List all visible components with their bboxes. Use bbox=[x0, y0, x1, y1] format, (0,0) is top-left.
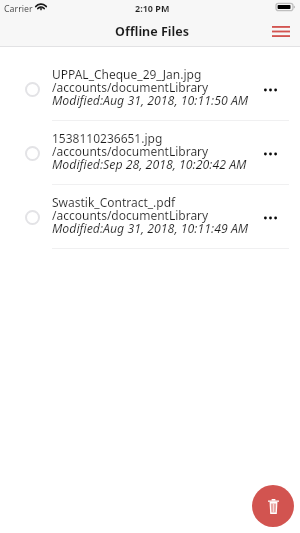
staticText: Carrier bbox=[4, 3, 33, 15]
staticText: Modified:Sep 28, 2018, 10:20:42 AM bbox=[52, 156, 267, 173]
staticText: UPPAL_Cheque_29_Jan.jpg bbox=[52, 66, 257, 82]
staticText: Modified:Aug 31, 2018, 10:11:50 AM bbox=[52, 92, 267, 109]
button[interactable]: Swastik_Contract_.pdf bbox=[0, 185, 300, 249]
staticText: /accounts/documentLibrary bbox=[52, 207, 257, 223]
button[interactable]: More options bbox=[257, 186, 283, 250]
staticText: 2:10 PM bbox=[135, 2, 170, 14]
staticText: Modified:Aug 31, 2018, 10:11:49 AM bbox=[52, 220, 267, 237]
staticText: Swastik_Contract_.pdf bbox=[52, 194, 257, 210]
staticText: 1538110236651.jpg bbox=[52, 130, 257, 146]
staticText: /accounts/documentLibrary bbox=[52, 79, 257, 95]
button[interactable]: Delete bbox=[252, 485, 294, 527]
staticText: /accounts/documentLibrary bbox=[52, 143, 257, 159]
button[interactable]: More options bbox=[257, 58, 283, 122]
button[interactable]: UPPAL_Cheque_29_Jan.jpg bbox=[0, 57, 300, 121]
button[interactable]: More options bbox=[257, 122, 283, 186]
staticText: Offline Files bbox=[115, 23, 190, 40]
button[interactable]: 1538110236651.jpg bbox=[0, 121, 300, 185]
button[interactable]: Menu bbox=[268, 20, 294, 42]
